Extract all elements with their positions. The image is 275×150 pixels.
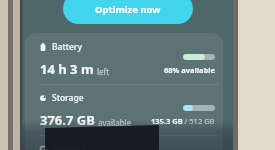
staticText: available (98, 117, 132, 128)
staticText: 135.3 GB / 512 GB (151, 116, 215, 126)
staticText: 376.7 GB (40, 111, 95, 129)
button[interactable]: Storage (25, 84, 223, 135)
staticText: Storage (52, 92, 84, 104)
button[interactable]: Optimize now (63, 0, 193, 24)
staticText: 14 h 3 m (40, 60, 94, 78)
staticText: 68% available (164, 65, 215, 75)
button[interactable]: Battery (25, 33, 223, 84)
staticText: left (97, 66, 110, 77)
staticText: Optimize now (95, 3, 161, 16)
staticText: Battery (52, 41, 82, 53)
button[interactable]: Memory (25, 135, 223, 150)
